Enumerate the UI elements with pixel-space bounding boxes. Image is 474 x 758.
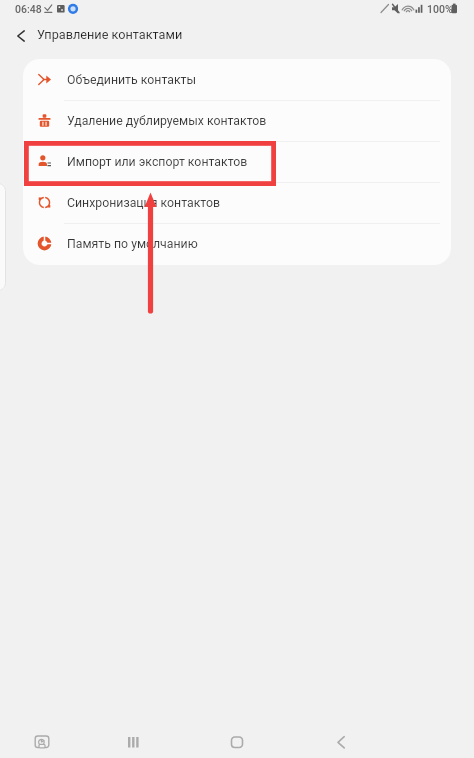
button[interactable]: Объединить контакты	[23, 59, 451, 100]
button[interactable]: Импорт или экспорт контактов	[23, 141, 451, 182]
staticText: 06:48	[15, 3, 42, 15]
staticText: Объединить контакты	[67, 73, 197, 87]
staticText: Удаление дублируемых контактов	[67, 114, 267, 128]
button[interactable]: Удаление дублируемых контактов	[23, 100, 451, 141]
staticText: Управление контактами	[37, 27, 183, 42]
button[interactable]: Back	[321, 727, 361, 751]
staticText: Импорт или экспорт контактов	[67, 155, 248, 169]
staticText: Синхронизация контактов	[67, 196, 221, 210]
button[interactable]: Capture screenshot	[22, 728, 62, 752]
button[interactable]: Синхронизация контактов	[23, 182, 451, 223]
button[interactable]: Home	[217, 727, 257, 751]
staticText: Память по умолчанию	[67, 237, 198, 251]
button[interactable]: Back	[3, 18, 39, 54]
button[interactable]: Память по умолчанию	[23, 223, 451, 264]
button[interactable]: Recent apps	[113, 727, 153, 751]
staticText: 100%	[427, 3, 453, 15]
